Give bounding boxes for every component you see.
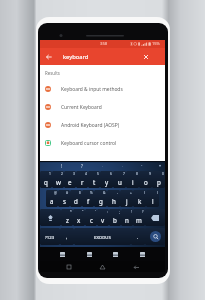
button[interactable]: ; (109, 209, 121, 226)
button[interactable]: # (58, 190, 70, 207)
staticText: c (90, 216, 93, 224)
staticText: 5 (97, 171, 99, 175)
staticText: + (130, 190, 132, 194)
staticText: 8 (136, 171, 138, 175)
staticText: EXODUS (94, 234, 111, 240)
button[interactable]: + (120, 190, 133, 207)
button[interactable]: - (107, 190, 120, 207)
button[interactable]: EXODUS (74, 228, 131, 245)
staticText: r (81, 178, 84, 186)
staticText: 3 (73, 171, 75, 175)
button[interactable]: 5 (88, 171, 100, 188)
staticText: : (107, 209, 108, 213)
staticText: ▾ (159, 163, 162, 168)
staticText: ; (119, 209, 120, 213)
staticText: h (112, 197, 116, 205)
staticText: ) (157, 190, 158, 194)
button[interactable]: Android Keyboard (AOSP) (40, 116, 165, 134)
staticText: ' (95, 209, 96, 213)
staticText: " (82, 209, 84, 213)
button[interactable]: Search (145, 228, 165, 245)
staticText: s (63, 197, 66, 205)
staticText: i (132, 178, 134, 186)
staticText: g (99, 197, 103, 205)
staticText: 0 (162, 171, 164, 175)
button[interactable]: Home (97, 261, 108, 272)
button[interactable]: Back (42, 48, 56, 65)
button[interactable]: & (94, 190, 107, 207)
button[interactable]: App 1 (58, 250, 67, 259)
staticText: 7 (123, 171, 125, 175)
button[interactable]: " (73, 209, 85, 226)
button[interactable]: Backspace (145, 209, 165, 226)
button[interactable]: 4 (76, 171, 88, 188)
staticText: ! (131, 209, 132, 213)
button[interactable]: ?123 (40, 228, 60, 245)
staticText: 1 (49, 171, 51, 175)
staticText: · (102, 163, 104, 169)
staticText: , (66, 234, 68, 240)
button[interactable]: 3 (64, 171, 76, 188)
button[interactable]: Keyboard & input methods (40, 80, 165, 98)
staticText: Results (45, 70, 60, 76)
staticText: # (66, 190, 69, 194)
staticText: a (50, 197, 54, 205)
staticText: & (103, 190, 106, 194)
button[interactable]: Clear search (139, 48, 153, 65)
button[interactable]: . (131, 228, 145, 245)
button[interactable]: 6 (100, 171, 113, 188)
button[interactable]: ? (133, 209, 145, 226)
button[interactable]: Current Keyboard (40, 98, 165, 116)
button[interactable]: 0 (152, 171, 165, 188)
staticText: u (118, 178, 122, 186)
button[interactable]: App 2 (85, 250, 94, 259)
button[interactable]: , (60, 228, 74, 245)
button[interactable]: % (82, 190, 94, 207)
button[interactable]: 9 (139, 171, 152, 188)
staticText: Keyboard cursor control (61, 140, 117, 147)
button[interactable]: 1 (40, 171, 52, 188)
staticText: y (105, 178, 109, 186)
staticText: % (90, 190, 93, 194)
button[interactable]: ' (85, 209, 97, 226)
staticText: ? (142, 209, 144, 213)
staticText: t (93, 178, 96, 186)
staticText: ? (81, 163, 83, 169)
staticText: 6 (110, 171, 112, 175)
staticText: 4 (85, 171, 87, 175)
button[interactable]: $ (70, 190, 82, 207)
staticText: ( (144, 190, 145, 194)
button[interactable]: Shift (40, 209, 61, 226)
button[interactable]: ( (133, 190, 146, 207)
staticText: m (136, 216, 142, 224)
button[interactable]: 8 (126, 171, 139, 188)
button[interactable]: Keyboard cursor control (40, 134, 165, 152)
staticText: 358 (100, 41, 108, 47)
button[interactable]: 7 (113, 171, 126, 188)
staticText: Android Keyboard (AOSP) (61, 122, 120, 129)
staticText: v (101, 216, 105, 224)
staticText: x (77, 216, 81, 224)
button[interactable]: App 3 (111, 250, 120, 259)
button[interactable]: ) (146, 190, 159, 207)
staticText: z (66, 216, 69, 224)
staticText: 9 (149, 171, 151, 175)
button[interactable]: ! (121, 209, 133, 226)
staticText: @ (54, 190, 57, 194)
button[interactable]: App 4 (138, 250, 147, 259)
button[interactable]: Recents (63, 261, 74, 272)
staticText: $ (79, 190, 81, 194)
staticText: ! (61, 163, 63, 169)
staticText: · (122, 163, 124, 169)
staticText: ?123 (45, 234, 55, 240)
button[interactable]: @ (46, 190, 58, 207)
button[interactable]: * (61, 209, 73, 226)
staticText: - (117, 190, 119, 194)
button[interactable]: Back (131, 261, 142, 272)
staticText: w (56, 178, 61, 186)
staticText: 2 (61, 171, 63, 175)
staticText: Keyboard & input methods (61, 86, 123, 93)
staticText: p (157, 178, 161, 186)
button[interactable]: : (97, 209, 109, 226)
button[interactable]: 2 (52, 171, 64, 188)
